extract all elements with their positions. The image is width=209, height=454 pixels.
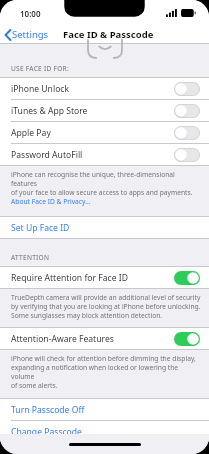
- button[interactable]: Require Attention for Face ID: [0, 267, 209, 288]
- staticText: expanding a notification when locked or …: [11, 363, 202, 381]
- button[interactable]: Set Up Face ID: [0, 217, 209, 238]
- button[interactable]: Turn Passcode Off: [0, 399, 209, 420]
- button[interactable]: Switch, on: [174, 271, 200, 285]
- staticText: Turn Passcode Off: [11, 404, 85, 416]
- button[interactable]: Switch, off: [174, 148, 200, 162]
- staticText: Settings: [12, 28, 49, 41]
- button[interactable]: Switch, off: [174, 104, 200, 118]
- button[interactable]: iPhone Unlock: [0, 78, 209, 99]
- staticText: iPhone can recognise the unique, three-d…: [11, 170, 202, 188]
- staticText: Attention-Aware Features: [11, 333, 114, 345]
- staticText: Some sunglasses may block attention dete…: [11, 311, 163, 320]
- staticText: iPhone will check for attention before d…: [11, 354, 196, 363]
- button[interactable]: Switch, off: [174, 126, 200, 140]
- staticText: USE FACE ID FOR:: [11, 64, 69, 73]
- staticText: Apple Pay: [11, 127, 51, 139]
- button[interactable]: Switch, on: [174, 332, 200, 346]
- button[interactable]: Change Passcode: [0, 421, 209, 442]
- staticText: by verifying that you are looking at iPh…: [11, 302, 201, 311]
- staticText: of some alerts.: [11, 381, 58, 390]
- button[interactable]: Attention-Aware Features: [0, 328, 209, 349]
- staticText: iTunes & App Store: [11, 105, 88, 117]
- staticText: TrueDepth camera will provide an additio…: [11, 293, 201, 302]
- button[interactable]: Back to Settings: [0, 26, 54, 43]
- staticText: Face ID & Passcode: [63, 28, 154, 41]
- staticText: 10:00: [20, 8, 41, 19]
- other: Home indicator: [69, 443, 141, 446]
- button[interactable]: Switch, off: [174, 82, 200, 96]
- button[interactable]: About Face ID & Privacy...: [11, 197, 91, 206]
- button[interactable]: Password AutoFill: [0, 144, 209, 165]
- staticText: Require Attention for Face ID: [11, 272, 128, 284]
- staticText: Password AutoFill: [11, 149, 83, 161]
- staticText: Set Up Face ID: [11, 222, 70, 234]
- staticText: Change Passcode: [11, 426, 82, 438]
- staticText: iPhone Unlock: [11, 83, 70, 95]
- staticText: ATTENTION: [11, 253, 50, 262]
- staticText: of your face to allow secure access to a…: [11, 188, 193, 197]
- button[interactable]: Apple Pay: [0, 122, 209, 143]
- button[interactable]: iTunes & App Store: [0, 100, 209, 121]
